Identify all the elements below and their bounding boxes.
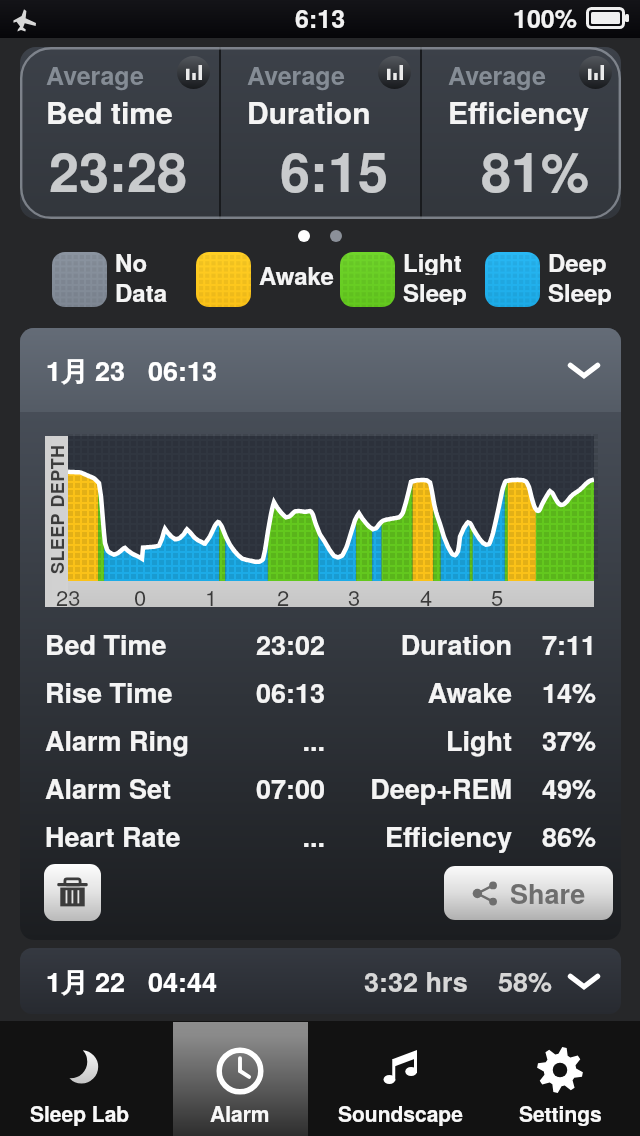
button[interactable]: Share (444, 866, 613, 920)
staticText: Duration (332, 625, 512, 664)
staticText: Data (115, 275, 168, 305)
staticText: 4 (420, 581, 433, 607)
button[interactable]: Settings (480, 1021, 640, 1136)
staticText: 5 (491, 581, 504, 607)
other: Expand (567, 968, 601, 994)
staticText: 3:32 hrs (364, 962, 468, 1001)
staticText: Sleep (403, 275, 468, 305)
staticText: 6:15 (279, 131, 388, 208)
staticText: Awake (332, 673, 512, 712)
staticText: 58% (498, 962, 553, 1001)
staticText: Deep+REM (332, 769, 512, 808)
staticText: Alarm Ring (45, 721, 220, 760)
other: Collapse (567, 357, 601, 383)
staticText: Efficiency (332, 817, 512, 856)
button[interactable]: Average (422, 47, 621, 219)
staticText: Alarm (210, 1098, 270, 1128)
button[interactable]: 1月 (20, 328, 621, 412)
staticText: Sleep Lab (30, 1098, 130, 1128)
staticText: Efficiency (448, 90, 590, 133)
staticText: Sleep (548, 275, 613, 305)
staticText: Rise Time (45, 673, 220, 712)
staticText: Bed time (46, 90, 173, 133)
staticText: 07:00 (220, 769, 325, 808)
staticText: ... (220, 817, 325, 856)
staticText: ... (220, 721, 325, 760)
staticText: Share (510, 874, 586, 913)
staticText: 6:13 (295, 0, 346, 36)
staticText: Average (247, 57, 345, 93)
staticText: 1月 (46, 351, 89, 390)
staticText: 2 (277, 581, 290, 607)
staticText: 100% (513, 0, 577, 36)
staticText: 14% (526, 673, 596, 712)
button[interactable]: Alarm (160, 1021, 320, 1136)
button[interactable]: 1月 (20, 948, 621, 1014)
staticText: 1月 (46, 962, 89, 1001)
staticText: 06:13 (220, 673, 325, 712)
button[interactable]: Statistics (579, 56, 612, 89)
staticText: Bed Time (45, 625, 220, 664)
staticText: Average (448, 57, 546, 93)
staticText: 23 (56, 581, 81, 607)
staticText: 3 (348, 581, 361, 607)
staticText: 23 (95, 351, 126, 390)
staticText: 0 (134, 581, 147, 607)
staticText: 22 (95, 962, 126, 1001)
staticText: SLEEP DEPTH (44, 444, 70, 574)
staticText: Awake (259, 258, 334, 292)
button[interactable]: Average (20, 47, 219, 219)
button[interactable]: Delete (44, 864, 101, 921)
staticText: 86% (526, 817, 596, 856)
staticText: 23:28 (48, 131, 187, 208)
button[interactable]: Soundscape (320, 1021, 480, 1136)
staticText: Duration (247, 90, 371, 133)
staticText: Soundscape (338, 1098, 463, 1128)
staticText: Average (46, 57, 144, 93)
staticText: 06:13 (148, 351, 218, 390)
staticText: Settings (519, 1098, 602, 1128)
staticText: 7:11 (526, 625, 596, 664)
staticText: Deep (548, 245, 607, 275)
staticText: Light (403, 245, 462, 275)
staticText: No (115, 245, 148, 275)
staticText: 37% (526, 721, 596, 760)
staticText: 23:02 (220, 625, 325, 664)
button[interactable]: Average (221, 47, 420, 219)
staticText: 81% (480, 131, 589, 208)
staticText: 49% (526, 769, 596, 808)
button[interactable]: Statistics (378, 56, 411, 89)
staticText: Light (332, 721, 512, 760)
staticText: Heart Rate (45, 817, 220, 856)
button[interactable]: Statistics (177, 56, 210, 89)
staticText: Alarm Set (45, 769, 220, 808)
staticText: 04:44 (148, 962, 218, 1001)
button[interactable]: Sleep Lab (0, 1021, 160, 1136)
staticText: 1 (205, 581, 218, 607)
